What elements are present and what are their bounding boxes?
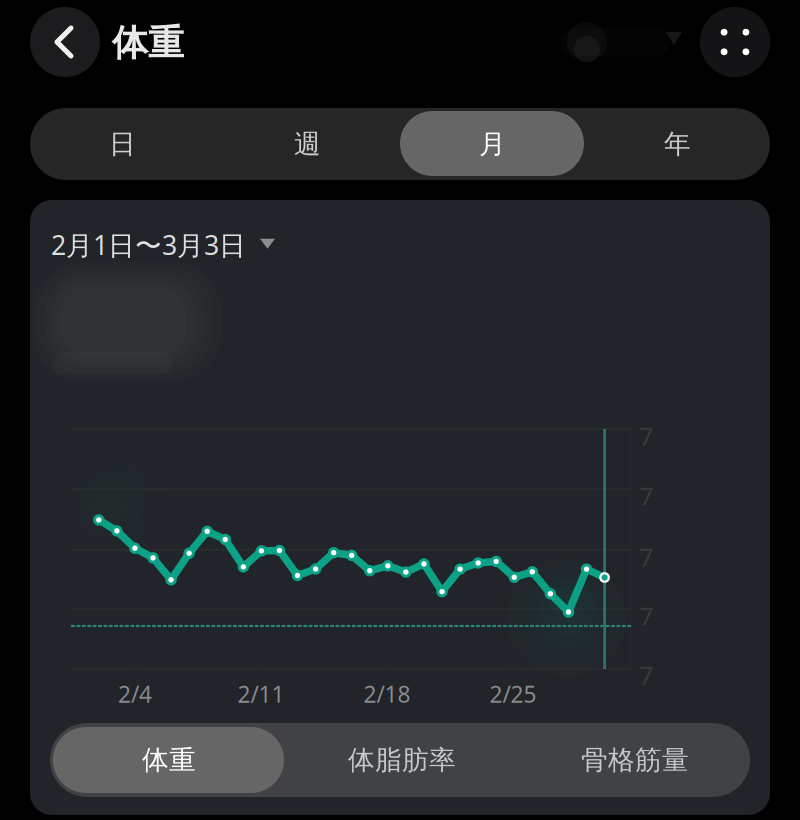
staticText: 2/25: [489, 679, 536, 709]
staticText: 体重: [112, 21, 184, 65]
staticText: 週: [294, 128, 321, 160]
button[interactable]: More options: [700, 7, 770, 77]
staticText: 骨格筋量: [581, 744, 689, 776]
staticText: 7: [639, 540, 653, 574]
staticText: 体重: [142, 744, 196, 776]
staticText: 年: [664, 128, 691, 160]
button[interactable]: 日: [30, 108, 215, 180]
staticText: 日: [109, 128, 136, 160]
button[interactable]: 年: [585, 108, 770, 180]
button[interactable]: 週: [215, 108, 400, 180]
staticText: 2/18: [363, 679, 410, 709]
staticText: 2月1日〜3月3日: [51, 227, 246, 262]
button[interactable]: 2月1日〜3月3日: [51, 227, 275, 262]
staticText: 2/4: [118, 679, 152, 709]
staticText: 体脂肪率: [348, 744, 456, 776]
button[interactable]: 骨格筋量: [518, 723, 751, 797]
staticText: 2/11: [237, 679, 284, 709]
button[interactable]: 体脂肪率: [285, 723, 518, 797]
button[interactable]: 体重: [52, 723, 285, 797]
button[interactable]: Back: [30, 7, 100, 77]
staticText: 7: [639, 599, 653, 633]
staticText: 7: [639, 658, 653, 692]
staticText: 7: [639, 419, 653, 453]
staticText: 月: [479, 128, 506, 160]
button[interactable]: 月: [400, 108, 585, 180]
staticText: 7: [639, 479, 653, 513]
